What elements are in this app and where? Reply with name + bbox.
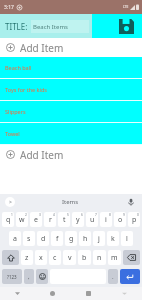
button[interactable]: u <box>86 212 98 227</box>
button[interactable]: Back <box>0 287 35 300</box>
button[interactable]: Beach ball <box>0 57 142 78</box>
staticText: b <box>82 253 87 263</box>
button[interactable]: Hide keyboard <box>106 287 142 300</box>
button[interactable]: Recents <box>70 287 106 300</box>
button[interactable]: ?123 <box>2 269 22 284</box>
button[interactable]: h <box>79 231 91 246</box>
staticText: 4 <box>53 213 55 217</box>
staticText: v <box>68 253 72 263</box>
button[interactable]: s <box>23 231 35 246</box>
button[interactable]: Emoji <box>36 269 48 284</box>
staticText: d <box>41 234 46 244</box>
button[interactable]: j <box>93 231 105 246</box>
staticText: k <box>111 234 115 244</box>
staticText: TITLE: <box>5 21 28 32</box>
button[interactable]: w <box>16 212 28 227</box>
staticText: x <box>39 253 43 263</box>
staticText: y <box>76 215 80 225</box>
staticText: e <box>34 215 38 225</box>
staticText: Towel <box>5 130 20 137</box>
button[interactable]: Beach Items <box>31 20 89 33</box>
button[interactable]: r <box>44 212 56 227</box>
button[interactable]: o <box>114 212 126 227</box>
button[interactable]: k <box>107 231 119 246</box>
staticText: o <box>118 215 123 225</box>
staticText: p <box>132 215 137 225</box>
staticText: 0 <box>137 213 139 217</box>
button[interactable]: . <box>108 269 118 284</box>
staticText: l <box>126 234 128 244</box>
staticText: 3:17 <box>4 4 14 11</box>
staticText: f <box>56 234 59 244</box>
staticText: r <box>49 215 52 225</box>
button[interactable]: y <box>72 212 84 227</box>
button[interactable]: g <box>65 231 77 246</box>
staticText: , <box>28 273 30 281</box>
staticText: Add Item <box>20 41 64 55</box>
button[interactable]: Shift <box>2 250 19 265</box>
button[interactable]: Voice input <box>125 196 137 208</box>
staticText: a <box>13 234 17 244</box>
button[interactable]: Home <box>35 287 70 300</box>
staticText: w <box>19 215 25 225</box>
staticText: m <box>111 253 118 263</box>
staticText: z <box>25 253 29 263</box>
button[interactable]: z <box>21 250 33 265</box>
staticText: 8 <box>109 213 111 217</box>
staticText: q <box>6 215 11 225</box>
staticText: 7 <box>95 213 97 217</box>
staticText: 9 <box>123 213 125 217</box>
button[interactable]: p <box>128 212 140 227</box>
button[interactable]: f <box>51 231 63 246</box>
staticText: 3 <box>39 213 41 217</box>
staticText: Toys for the kids <box>5 86 47 93</box>
staticText: . <box>112 273 114 281</box>
staticText: 1 <box>11 213 13 217</box>
staticText: 5 <box>67 213 69 217</box>
button[interactable]: b <box>78 250 91 265</box>
staticText: h <box>83 234 88 244</box>
staticText: j <box>98 234 100 244</box>
staticText: t <box>63 215 66 225</box>
button[interactable]: n <box>93 250 106 265</box>
staticText: Beach Items <box>33 23 68 31</box>
button[interactable]: Save <box>113 14 139 38</box>
staticText: i <box>105 215 107 225</box>
staticText: Add Item <box>20 148 64 162</box>
button[interactable]: d <box>37 231 49 246</box>
button[interactable]: e <box>30 212 42 227</box>
button[interactable]: Add Item <box>0 38 142 57</box>
staticText: c <box>53 253 57 263</box>
button[interactable]: Enter <box>120 269 140 284</box>
button[interactable]: More suggestions <box>5 197 15 207</box>
staticText: n <box>97 253 102 263</box>
staticText: Slippers <box>5 108 26 115</box>
button[interactable]: Slippers <box>0 101 142 122</box>
staticText: 6 <box>81 213 83 217</box>
staticText: Items <box>62 198 79 206</box>
button[interactable]: m <box>108 250 121 265</box>
staticText: u <box>90 215 95 225</box>
button[interactable]: a <box>9 231 21 246</box>
button[interactable]: t <box>58 212 70 227</box>
button[interactable]: Backspace <box>123 250 140 265</box>
staticText: > <box>9 199 12 206</box>
staticText: Beach ball <box>5 64 32 71</box>
staticText: LTE <box>123 5 129 9</box>
button[interactable]: , <box>24 269 34 284</box>
button[interactable]: Add Item <box>0 145 142 164</box>
staticText: g <box>69 234 74 244</box>
button[interactable]: i <box>100 212 112 227</box>
staticText: ?123 <box>7 274 17 280</box>
button[interactable]: v <box>63 250 76 265</box>
button[interactable]: Toys for the kids <box>0 79 142 100</box>
button[interactable]: q <box>2 212 14 227</box>
button[interactable]: l <box>121 231 133 246</box>
button[interactable]: c <box>49 250 61 265</box>
staticText: 2 <box>25 213 27 217</box>
button[interactable]: Towel <box>0 123 142 144</box>
staticText: s <box>27 234 31 244</box>
button[interactable]: x <box>35 250 47 265</box>
